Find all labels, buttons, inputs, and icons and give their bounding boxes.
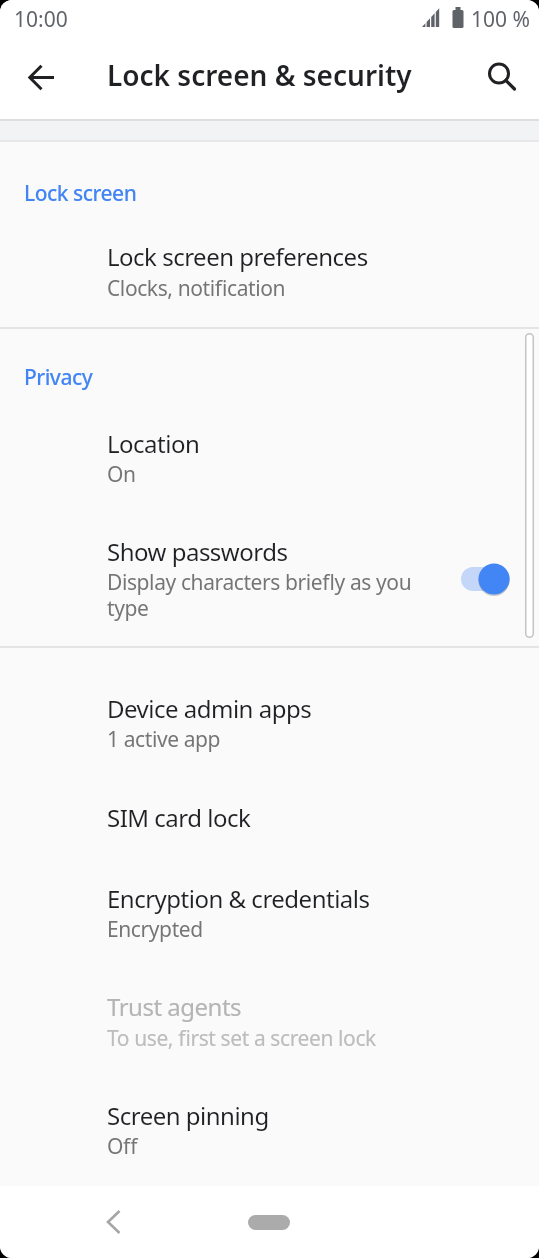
staticText: 100 % — [471, 5, 530, 34]
staticText: Clocks, notification — [107, 274, 447, 303]
staticText: Encrypted — [107, 915, 447, 944]
button[interactable]: Location — [0, 413, 539, 495]
staticText: Off — [107, 1132, 447, 1161]
button[interactable]: Encryption & credentials — [0, 871, 539, 957]
staticText: To use, first set a screen lock — [107, 1024, 447, 1053]
button[interactable]: Lock screen preferences — [0, 227, 539, 322]
staticText: Trust agents — [107, 990, 242, 1023]
staticText: Device admin apps — [107, 692, 312, 725]
button[interactable] — [89, 1198, 137, 1246]
staticText: 1 active app — [107, 725, 447, 754]
button[interactable]: Show passwords — [0, 521, 539, 623]
staticText: Show passwords — [107, 535, 288, 568]
staticText: Display characters briefly as you type — [107, 568, 447, 622]
staticText: On — [107, 460, 447, 489]
staticText: Lock screen preferences — [107, 240, 368, 273]
button[interactable] — [245, 1210, 293, 1234]
staticText: Lock screen — [24, 179, 137, 208]
staticText: Location — [107, 427, 200, 460]
staticText: Screen pinning — [107, 1099, 269, 1132]
button[interactable] — [478, 51, 526, 99]
staticText: Lock screen & security — [107, 56, 412, 94]
staticText: SIM card lock — [107, 801, 251, 834]
button[interactable] — [455, 561, 517, 601]
button[interactable]: SIM card lock — [0, 782, 539, 848]
button[interactable]: Trust agents — [0, 979, 539, 1065]
staticText: Encryption & credentials — [107, 882, 370, 915]
button[interactable]: Device admin apps — [0, 681, 539, 767]
staticText: Privacy — [24, 363, 93, 392]
staticText: 10:00 — [14, 5, 68, 34]
button[interactable] — [18, 54, 66, 102]
button[interactable]: Screen pinning — [0, 1088, 539, 1174]
